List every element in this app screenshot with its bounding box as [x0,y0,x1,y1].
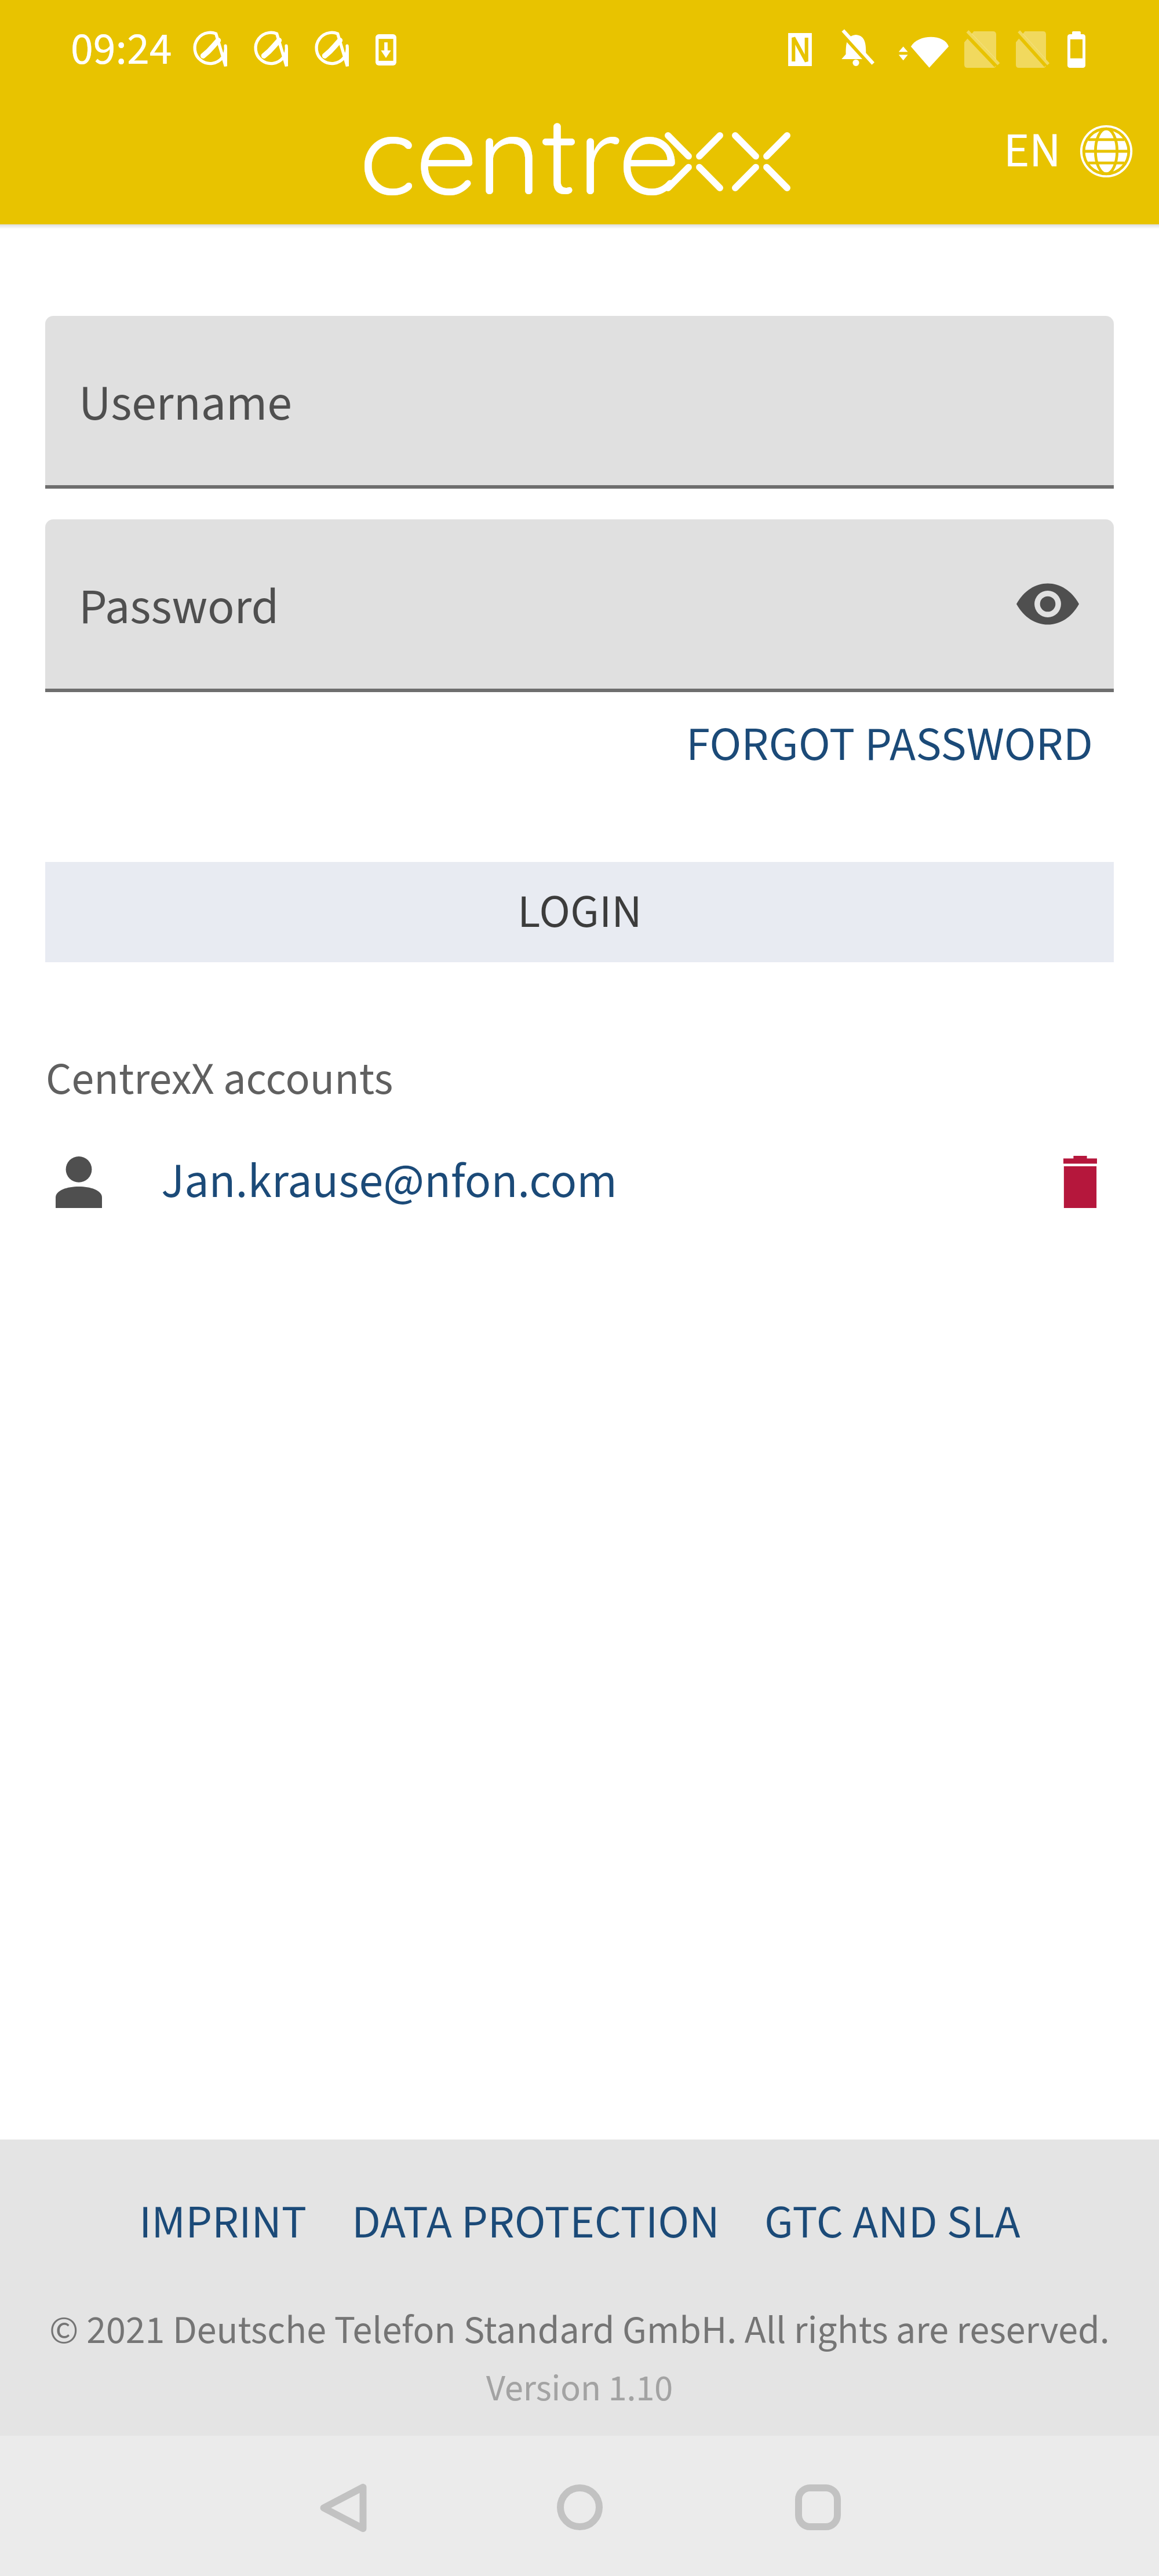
staticText: CentrexX accounts [46,1047,393,1112]
staticText: centre [359,85,680,221]
staticText: Jan.krause@nfon.com [161,1147,617,1217]
button[interactable]: LOGIN [45,862,1114,962]
button[interactable]: GTC AND SLA [764,2189,1020,2256]
staticText: DATA PROTECTION [352,2189,720,2256]
button[interactable]: Show password [1016,583,1079,625]
staticText: Password [79,572,279,643]
staticText: GTC AND SLA [764,2189,1020,2256]
button[interactable]: DATA PROTECTION [352,2189,720,2256]
staticText: EN [1004,117,1061,186]
button[interactable]: IMPRINT [139,2189,307,2256]
button[interactable]: Home [498,2436,661,2576]
staticText: LOGIN [517,879,642,945]
staticText: © 2021 Deutsche Telefon Standard GmbH. A… [49,2302,1110,2359]
button[interactable]: Change language [998,111,1140,192]
button[interactable]: Username [45,316,1114,485]
staticText: FORGOT PASSWORD [686,711,1093,779]
button[interactable]: Back [261,2436,424,2576]
button[interactable]: Jan.krause@nfon.com [0,1144,1159,1220]
staticText: IMPRINT [139,2189,307,2256]
staticText: Username [79,369,293,439]
staticText: Version 1.10 [486,2362,673,2415]
button[interactable]: Delete account [1052,1144,1109,1220]
button[interactable]: FORGOT PASSWORD [686,711,1093,779]
staticText: 09:24 [71,17,172,82]
button[interactable]: Password [45,519,1114,689]
button[interactable]: Recent apps [737,2436,899,2576]
